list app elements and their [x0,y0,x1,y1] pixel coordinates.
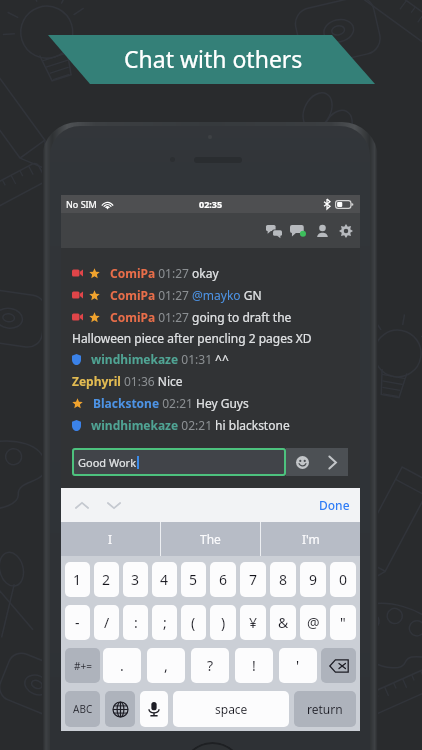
staticText: No SIM [66,198,97,210]
staticText: Done [319,497,350,513]
button[interactable]: I [61,522,160,556]
button[interactable]: " [330,605,356,640]
staticText: Chat with others [124,43,303,74]
button[interactable]: Delete [321,648,356,683]
staticText: 3 [131,570,140,589]
button[interactable]: ? [191,648,229,683]
button[interactable]: 7 [240,562,266,597]
staticText: " [340,613,346,632]
button[interactable]: return [294,691,356,727]
button[interactable]: Chats [262,219,286,243]
staticText: I [108,531,113,547]
staticText: 2 [102,570,111,589]
button[interactable]: ABC [65,691,100,727]
staticText: ! [252,656,256,675]
button[interactable]: ) [210,605,236,640]
staticText: ABC [73,702,93,716]
button[interactable]: space [173,691,289,727]
staticText: : [134,613,138,632]
staticText: #+= [74,659,92,673]
button[interactable]: : [123,605,148,640]
button[interactable]: People [310,219,334,243]
button[interactable]: 9 [300,562,326,597]
staticText: , [164,656,168,675]
staticText: - [75,613,80,632]
button[interactable]: 2 [94,562,119,597]
button[interactable]: Previous field [69,492,95,518]
staticText: ComiPa 01:27 okay [110,265,219,281]
staticText: ComiPa 01:27 @mayko GN [110,287,262,303]
button[interactable]: ¥ [240,605,266,640]
button[interactable]: . [103,648,141,683]
staticText: 9 [309,570,318,589]
button[interactable]: 1 [65,562,90,597]
staticText: windhimekaze 01:31 ^^ [91,351,229,367]
button[interactable]: Messages [286,219,310,243]
staticText: I'm [302,531,320,547]
staticText: ) [221,613,226,632]
button[interactable]: Dictate [140,691,168,727]
staticText: ' [296,656,300,675]
button[interactable]: 0 [330,562,356,597]
staticText: windhimekaze 02:21 hi blackstone [91,417,290,433]
staticText: 0 [339,570,348,589]
button[interactable]: - [65,605,90,640]
button[interactable]: I'm [261,522,360,556]
button[interactable]: ; [152,605,177,640]
button[interactable]: 6 [210,562,236,597]
button[interactable]: / [94,605,119,640]
button[interactable]: ' [279,648,317,683]
button[interactable]: ! [235,648,273,683]
button[interactable]: ( [181,605,206,640]
staticText: 8 [279,570,288,589]
staticText: 5 [189,570,198,589]
staticText: 6 [219,570,228,589]
staticText: 02:35 [199,198,223,210]
staticText: space [215,701,248,717]
staticText: & [278,613,289,632]
staticText: 1 [73,570,82,589]
button[interactable]: Emoji [289,449,315,475]
staticText: 4 [160,570,169,589]
button[interactable]: 5 [181,562,206,597]
staticText: @ [307,613,320,632]
staticText: ? [207,656,214,675]
button[interactable]: , [147,648,185,683]
staticText: 7 [249,570,258,589]
staticText: The [200,531,221,547]
staticText: ComiPa 01:27 going to draft the [110,309,292,325]
button[interactable]: Good Work [72,448,286,476]
button[interactable]: Change keyboard [105,691,135,727]
button[interactable]: @ [300,605,326,640]
button[interactable]: #+= [65,648,100,683]
staticText: Blackstone 02:21 Hey Guys [93,395,249,411]
button[interactable]: 8 [270,562,296,597]
button[interactable]: & [270,605,296,640]
button[interactable]: 4 [152,562,177,597]
staticText: return [307,701,343,717]
button[interactable]: The [161,522,260,556]
button[interactable]: Send [319,449,345,475]
button[interactable]: Done [309,491,360,519]
button[interactable]: 3 [123,562,148,597]
button[interactable]: Next field [101,492,127,518]
staticText: / [104,613,110,632]
staticText: ¥ [249,613,258,632]
staticText: . [120,656,124,675]
button[interactable]: Settings [334,219,358,243]
staticText: ( [191,613,196,632]
staticText: Halloween piece after pencling 2 pages X… [72,330,312,346]
staticText: Zephyril 01:36 Nice [72,373,183,389]
staticText: ; [163,613,167,632]
staticText: Good Work [78,455,137,470]
